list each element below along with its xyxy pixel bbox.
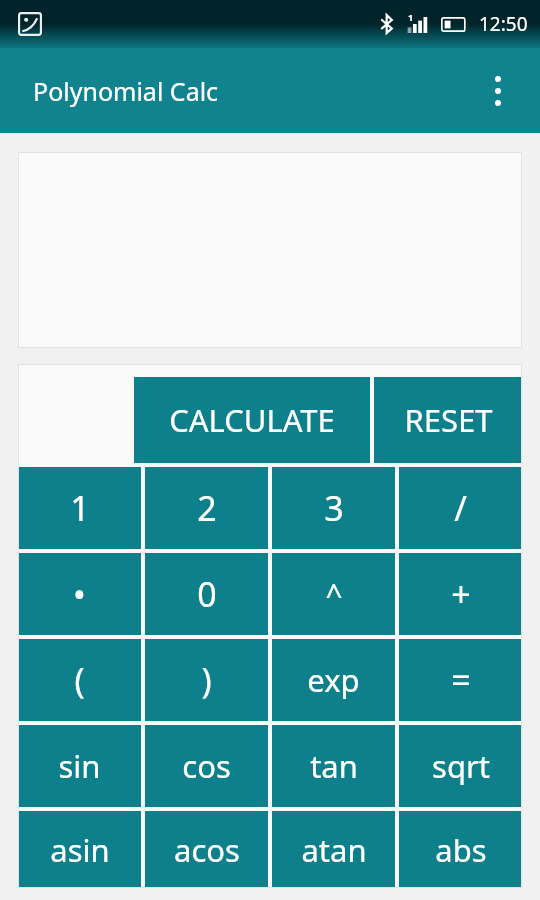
staticText: acos	[174, 829, 240, 871]
button[interactable]: abs	[399, 811, 522, 888]
staticText: 3	[324, 485, 344, 531]
button[interactable]: More options	[474, 67, 522, 115]
button[interactable]: 2	[145, 467, 268, 549]
button[interactable]: •	[18, 553, 141, 635]
staticText: 1	[408, 11, 414, 23]
staticText: tan	[310, 745, 358, 787]
staticText: CALCULATE	[169, 399, 335, 441]
staticText: Polynomial Calc	[33, 74, 219, 108]
staticText: 0	[197, 571, 217, 617]
button[interactable]: acos	[145, 811, 268, 888]
staticText: asin	[50, 829, 110, 871]
button[interactable]: (	[18, 639, 141, 721]
button[interactable]: sqrt	[399, 725, 522, 807]
button[interactable]: 1	[18, 467, 141, 549]
button[interactable]: CALCULATE	[134, 377, 370, 463]
button[interactable]: cos	[145, 725, 268, 807]
button[interactable]: exp	[272, 639, 395, 721]
button[interactable]: asin	[18, 811, 141, 888]
staticText: 1	[70, 485, 90, 531]
staticText: +	[451, 571, 471, 617]
staticText: abs	[435, 829, 487, 871]
button[interactable]: tan	[272, 725, 395, 807]
button[interactable]: )	[145, 639, 268, 721]
button[interactable]: /	[399, 467, 522, 549]
staticText: 2	[197, 485, 217, 531]
staticText: exp	[307, 659, 360, 701]
staticText: (	[74, 657, 85, 703]
staticText: •	[73, 571, 86, 617]
button[interactable]: atan	[272, 811, 395, 888]
button[interactable]: +	[399, 553, 522, 635]
staticText: )	[201, 657, 212, 703]
staticText: ^	[325, 574, 343, 615]
button[interactable]: 0	[145, 553, 268, 635]
button[interactable]: =	[399, 639, 522, 721]
button[interactable]: RESET	[374, 377, 522, 463]
button[interactable]: sin	[18, 725, 141, 807]
staticText: =	[451, 657, 471, 703]
button[interactable]: ^	[272, 553, 395, 635]
button[interactable]: 3	[272, 467, 395, 549]
staticText: RESET	[404, 399, 493, 441]
staticText: sqrt	[432, 745, 490, 787]
staticText: sin	[58, 745, 101, 787]
staticText: atan	[301, 829, 367, 871]
staticText: /	[454, 485, 467, 531]
staticText: cos	[182, 745, 231, 787]
staticText: 12:50	[479, 11, 528, 37]
